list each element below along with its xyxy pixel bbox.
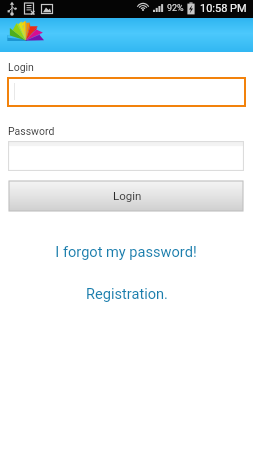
staticText: 10:58 PM bbox=[200, 2, 247, 15]
staticText: Login bbox=[113, 189, 142, 202]
staticText: I forgot my password! bbox=[55, 243, 197, 260]
button[interactable]: I forgot my password! bbox=[0, 242, 252, 260]
other: Gallery bbox=[0, 18, 253, 52]
button[interactable] bbox=[7, 77, 246, 107]
button[interactable]: Login bbox=[9, 181, 243, 211]
staticText: 92% bbox=[167, 3, 184, 14]
staticText: Password bbox=[8, 125, 55, 137]
button[interactable]: Registration. bbox=[0, 284, 253, 302]
staticText: Login bbox=[8, 61, 34, 73]
staticText: Registration. bbox=[86, 285, 168, 302]
button[interactable] bbox=[8, 141, 244, 171]
